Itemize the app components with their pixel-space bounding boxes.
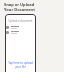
- staticText: Your Document: [4, 7, 35, 12]
- button[interactable]: [6, 26, 36, 29]
- staticText: Upload a document: [5, 19, 36, 23]
- button[interactable]: Upload a document: [5, 14, 36, 72]
- button[interactable]: [6, 31, 36, 34]
- staticText: Snap or Upload: [4, 2, 35, 7]
- staticText: Tap here to upload your file: [5, 61, 36, 69]
